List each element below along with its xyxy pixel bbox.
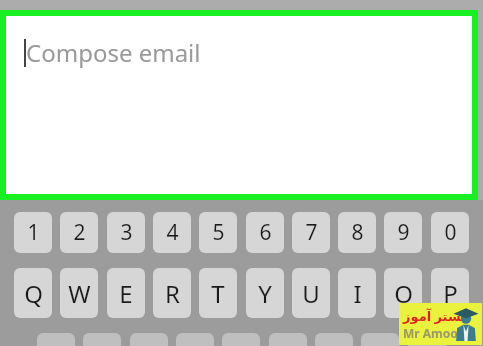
staticText: O	[394, 277, 413, 310]
button[interactable]: E	[107, 268, 145, 318]
staticText: 2	[73, 218, 86, 247]
button[interactable]	[269, 333, 307, 346]
staticText: 9	[397, 218, 410, 247]
button[interactable]: Q	[14, 268, 52, 318]
button[interactable]	[408, 333, 446, 346]
button[interactable]: 5	[199, 212, 237, 253]
staticText: 5	[212, 218, 225, 247]
button[interactable]: 6	[246, 212, 284, 253]
staticText: مستر آموز	[403, 307, 470, 325]
button[interactable]: T	[199, 268, 237, 318]
staticText: T	[211, 277, 225, 310]
button[interactable]: U	[292, 268, 330, 318]
button[interactable]: Y	[246, 268, 284, 318]
button[interactable]	[37, 333, 75, 346]
button[interactable]: Compose email	[6, 16, 472, 194]
staticText: P	[443, 277, 458, 310]
button[interactable]: 9	[384, 212, 422, 253]
staticText: 6	[259, 218, 272, 247]
staticText: Compose email	[26, 36, 201, 69]
button[interactable]: 4	[153, 212, 191, 253]
button[interactable]	[130, 333, 168, 346]
button[interactable]: 3	[107, 212, 145, 253]
button[interactable]	[222, 333, 260, 346]
button[interactable]: 8	[338, 212, 376, 253]
staticText: 7	[305, 218, 318, 247]
staticText: 1	[27, 218, 40, 247]
button[interactable]: 2	[60, 212, 98, 253]
button[interactable]: 7	[292, 212, 330, 253]
button[interactable]	[83, 333, 121, 346]
other: Mr Amooz watermark	[399, 303, 482, 345]
button[interactable]: O	[384, 268, 422, 318]
staticText: R	[165, 277, 180, 310]
button[interactable]: W	[60, 268, 98, 318]
staticText: 3	[120, 218, 133, 247]
staticText: Y	[258, 277, 272, 310]
staticText: 0	[444, 218, 457, 247]
button[interactable]: I	[338, 268, 376, 318]
staticText: U	[302, 277, 320, 310]
button[interactable]: R	[153, 268, 191, 318]
button[interactable]: 0	[431, 212, 469, 253]
staticText: 4	[166, 218, 179, 247]
button[interactable]: P	[431, 268, 469, 318]
button[interactable]	[315, 333, 353, 346]
button[interactable]	[361, 333, 399, 346]
staticText: 8	[351, 218, 364, 247]
staticText: W	[68, 277, 91, 310]
staticText: Q	[24, 277, 43, 310]
staticText: Mr Amooz	[403, 325, 464, 341]
button[interactable]	[176, 333, 214, 346]
staticText: I	[353, 277, 362, 310]
button[interactable]: 1	[14, 212, 52, 253]
staticText: E	[119, 277, 133, 310]
